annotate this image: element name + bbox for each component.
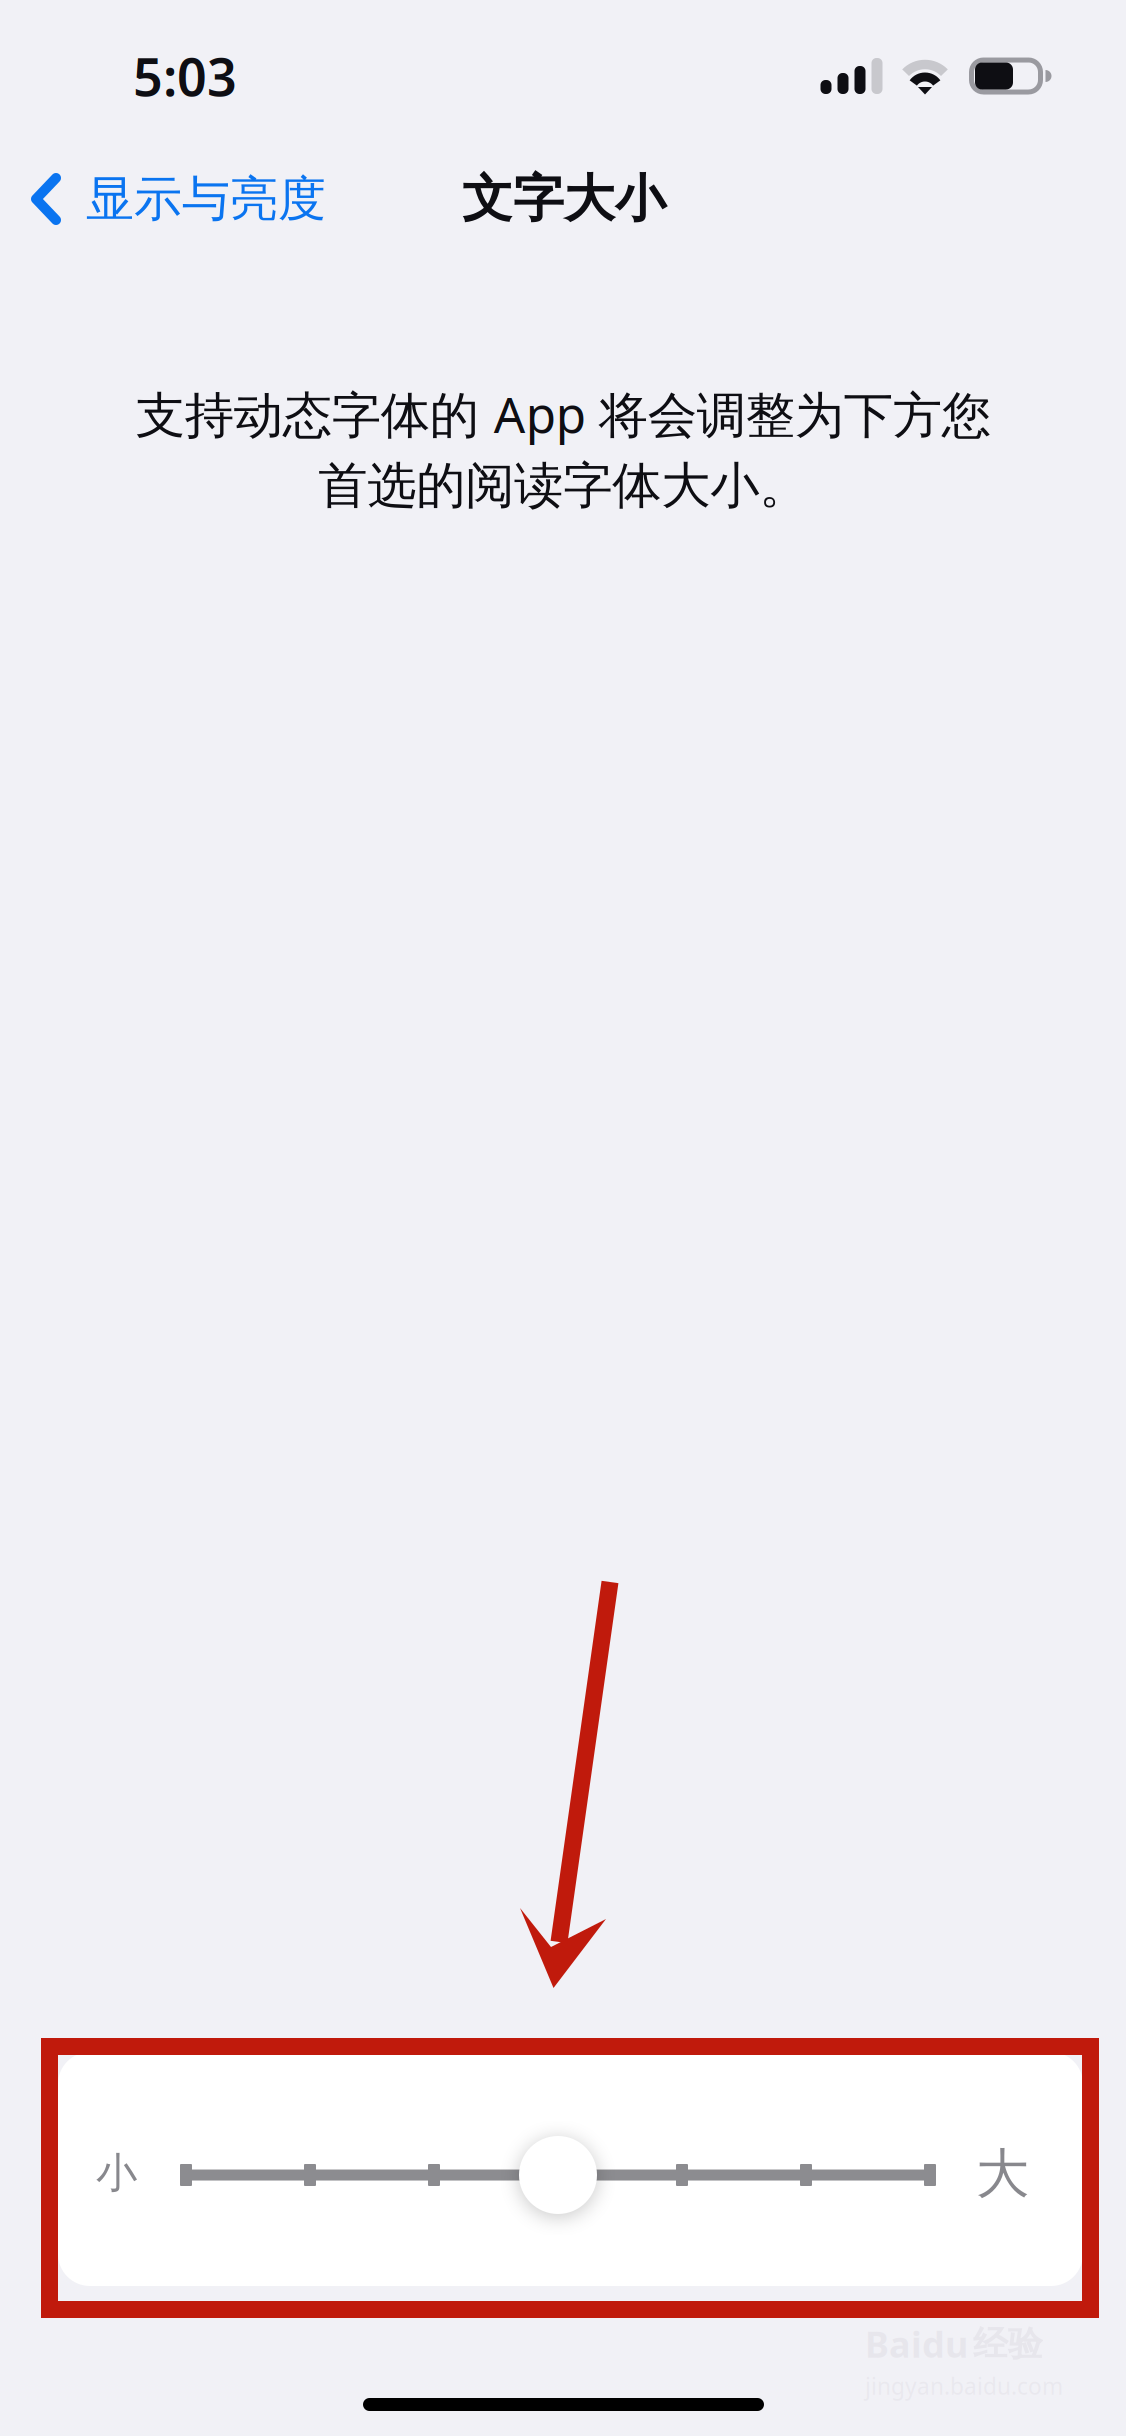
- staticText: 5:03: [133, 41, 237, 111]
- staticText: 小: [96, 2148, 137, 2198]
- staticText: 大: [976, 2141, 1029, 2207]
- staticText: 支持动态字体的 App 将会调整为下方您首选的阅读字体大小。: [135, 381, 990, 516]
- staticText: 文字大小: [462, 168, 666, 230]
- staticText: 经验: [973, 2323, 1043, 2365]
- staticText: 显示与亮度: [86, 169, 326, 228]
- button[interactable]: 文字大小 滑块: [58, 2052, 1083, 2286]
- button[interactable]: 返回 显示与亮度: [0, 155, 342, 242]
- staticText: Baidu: [865, 2320, 968, 2368]
